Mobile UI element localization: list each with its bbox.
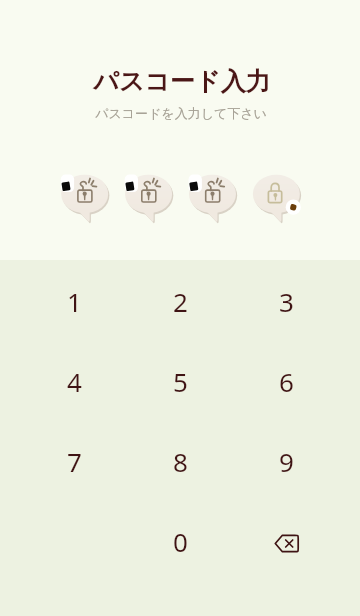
staticText: 3 (279, 284, 294, 319)
button[interactable]: 4 (36, 350, 112, 412)
button[interactable]: Backspace (248, 512, 324, 574)
button[interactable]: 5 (142, 350, 218, 412)
staticText: 2 (173, 284, 188, 319)
staticText: パスコードを入力して下さい (95, 105, 267, 121)
staticText: 6 (279, 364, 294, 399)
button[interactable]: 3 (248, 270, 324, 332)
button[interactable]: 1 (36, 270, 112, 332)
staticText: 8 (173, 444, 188, 479)
staticText: 1 (67, 284, 82, 319)
staticText: パスコード入力 (93, 66, 271, 97)
staticText: 0 (173, 524, 188, 559)
button[interactable]: 0 (142, 510, 218, 572)
staticText: 4 (67, 364, 82, 399)
staticText: 5 (173, 364, 188, 399)
button[interactable]: 7 (36, 430, 112, 492)
staticText: 9 (279, 444, 294, 479)
button[interactable]: 8 (142, 430, 218, 492)
button[interactable]: 9 (248, 430, 324, 492)
button[interactable]: 6 (248, 350, 324, 412)
button[interactable]: 2 (142, 270, 218, 332)
staticText: 7 (67, 444, 82, 479)
